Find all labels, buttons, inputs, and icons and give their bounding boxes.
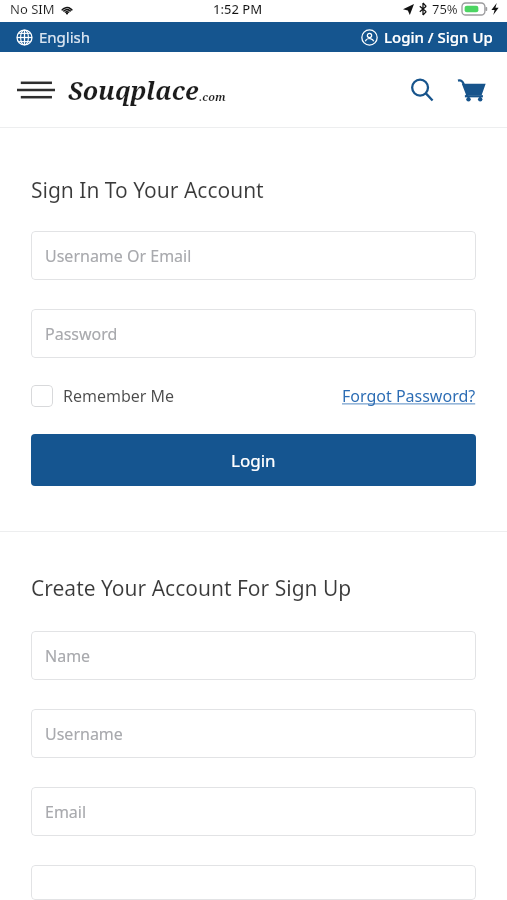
staticText: Forgot Password? [342,385,476,407]
staticText: Souqplace [68,73,199,107]
staticText: Login / Sign Up [384,27,493,47]
button[interactable]: Forgot Password? [342,385,476,407]
staticText: Create Your Account For Sign Up [31,574,352,603]
button[interactable]: English [16,27,91,47]
staticText: Login [231,449,276,472]
button[interactable]: Username Or Email [31,231,476,280]
button[interactable]: Search [401,69,443,111]
button[interactable]: Menu [14,70,58,110]
staticText: 75% [432,0,458,18]
staticText: No SIM [10,0,55,18]
button[interactable] [31,865,476,900]
button[interactable]: Login [31,434,476,486]
staticText: .com [199,89,226,104]
staticText: Name [45,645,91,667]
button[interactable]: Password [31,309,476,358]
button[interactable]: Name [31,631,476,680]
staticText: Email [45,801,87,823]
button[interactable]: Email [31,787,476,836]
staticText: Remember Me [63,385,175,407]
staticText: Sign In To Your Account [31,176,264,205]
button[interactable]: Username [31,709,476,758]
staticText: Username Or Email [45,245,192,267]
button[interactable]: Login / Sign Up [361,27,493,47]
button[interactable]: Cart [449,69,491,111]
button[interactable]: Remember Me [31,385,175,407]
staticText: 1:52 PM [213,0,263,18]
staticText: Password [45,323,118,345]
staticText: English [39,27,91,47]
staticText: Username [45,723,123,745]
button[interactable]: Souqplace [68,73,226,107]
